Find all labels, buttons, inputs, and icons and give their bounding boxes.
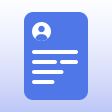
button[interactable]: Profile card: [24, 12, 88, 100]
